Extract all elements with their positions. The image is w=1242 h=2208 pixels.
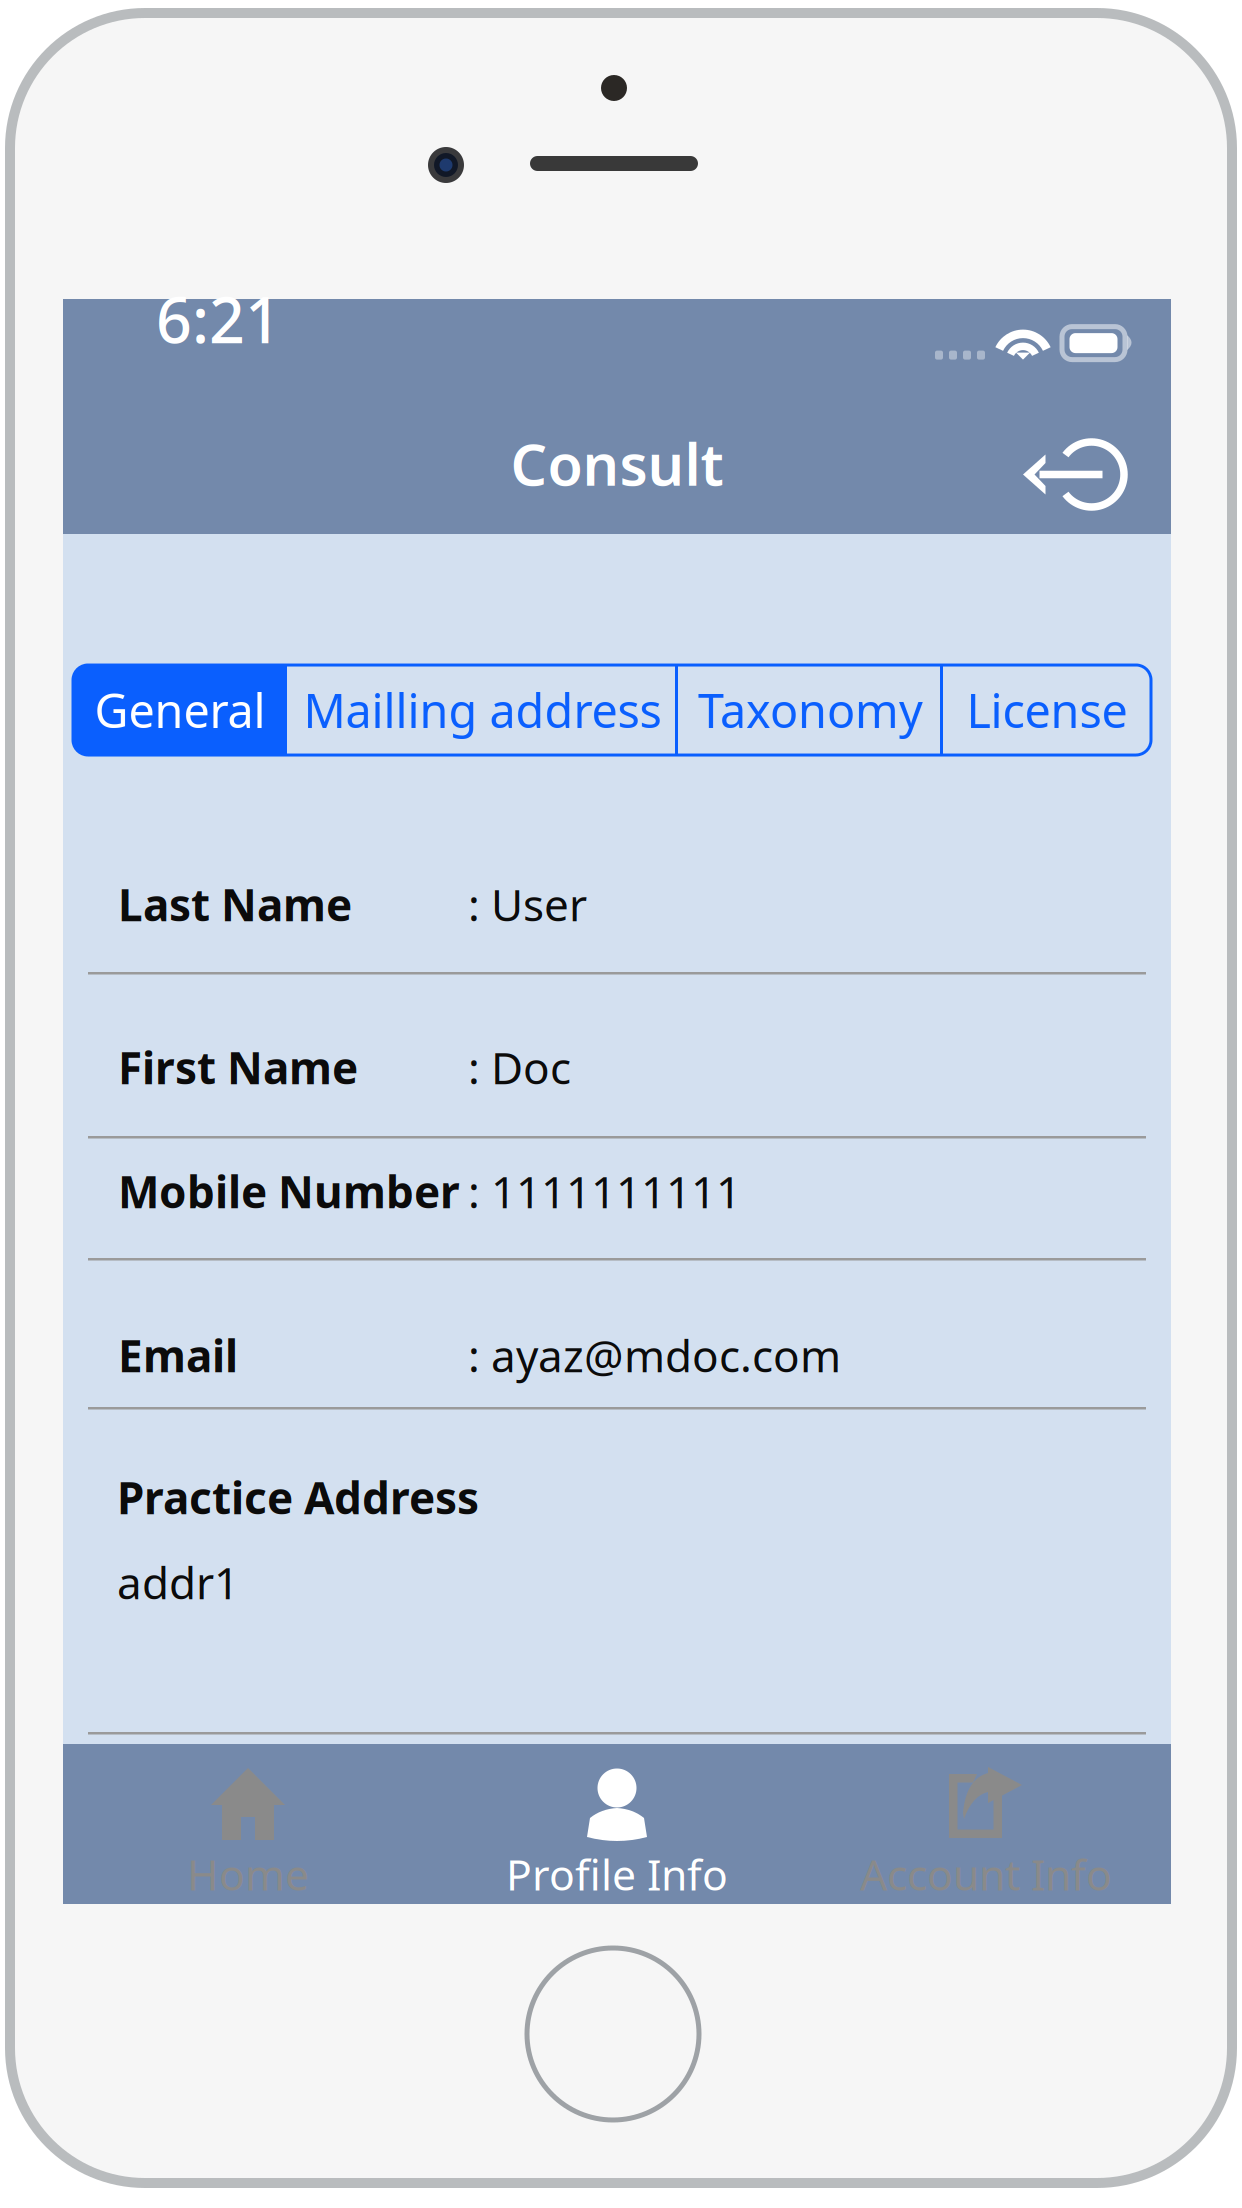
button[interactable]: Account Info — [801, 1744, 1170, 1904]
staticText: Account Info — [860, 1846, 1112, 1902]
button[interactable]: Log out — [1000, 349, 1171, 549]
button[interactable]: Mailling address — [287, 665, 678, 755]
staticText: 6:21 — [156, 277, 281, 361]
staticText: First Name — [118, 1038, 358, 1096]
staticText: Practice Address — [117, 1468, 479, 1526]
button[interactable]: Taxonomy — [678, 665, 943, 755]
staticText: Taxonomy — [698, 679, 923, 741]
staticText: Email — [118, 1326, 238, 1384]
staticText: General — [94, 679, 265, 741]
staticText: Last Name — [118, 875, 352, 933]
button[interactable]: General — [73, 665, 287, 755]
button[interactable]: License — [943, 665, 1151, 755]
staticText: : Doc — [468, 1038, 571, 1096]
staticText: Mailling address — [303, 679, 661, 741]
staticText: Mobile Number — [118, 1162, 460, 1220]
staticText: Consult — [510, 425, 723, 501]
staticText: Profile Info — [506, 1846, 728, 1902]
staticText: addr1 — [117, 1553, 239, 1611]
staticText: : ayaz@mdoc.com — [468, 1326, 841, 1384]
staticText: : User — [468, 875, 587, 933]
staticText: License — [966, 679, 1127, 741]
staticText: Home — [187, 1846, 309, 1902]
button[interactable]: Home — [63, 1744, 432, 1904]
button[interactable]: Profile Info — [432, 1744, 801, 1904]
staticText: : 1111111111 — [468, 1162, 741, 1220]
